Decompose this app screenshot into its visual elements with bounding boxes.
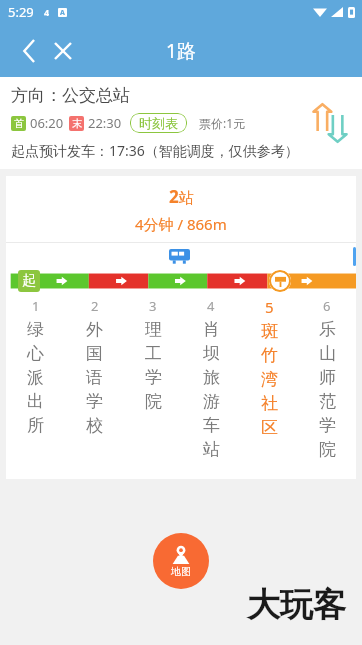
staticText: 绿 [27,319,44,340]
staticText: 湾 [261,369,278,390]
staticText: 学 [86,391,103,412]
staticText: 4 [44,6,50,18]
staticText: 竹 [261,345,278,366]
staticText: 4 [207,297,215,315]
staticText: 出 [27,391,44,412]
staticText: 06:20 [30,114,64,132]
staticText: 外 [86,319,103,340]
staticText: 乐 [319,319,336,340]
staticText: 3 [149,297,157,315]
staticText: 首 [14,117,24,130]
button[interactable]: Back [12,34,46,68]
staticText: 1路 [166,38,196,64]
staticText: 车 [203,415,220,436]
staticText: 22:30 [88,114,122,132]
staticText: 理 [145,319,162,340]
staticText: 方向：公交总站 [11,85,130,106]
other: Current station [269,270,291,292]
staticText: 站 [179,189,194,208]
staticText: A [60,8,65,17]
button[interactable]: Map [153,533,209,589]
staticText: 心 [27,343,44,364]
staticText: 区 [261,417,278,438]
button[interactable]: 6 [298,297,356,463]
staticText: 地图 [171,565,191,578]
staticText: 工 [145,343,162,364]
button[interactable]: 时刻表 [130,113,187,133]
staticText: 派 [27,367,44,388]
staticText: 院 [319,439,336,460]
button[interactable]: 5 [240,297,298,441]
staticText: 山 [319,343,336,364]
staticText: 师 [319,367,336,388]
staticText: 旅 [203,367,220,388]
staticText: 大玩客 [247,584,346,626]
staticText: 学 [319,415,336,436]
staticText: 起 [22,272,36,290]
button[interactable]: 2 [65,297,124,439]
staticText: 坝 [203,343,220,364]
staticText: 2 [91,297,99,315]
staticText: 站 [203,439,220,460]
staticText: 学 [145,367,162,388]
button[interactable]: 1 [6,297,65,439]
staticText: 所 [27,415,44,436]
staticText: 票价:1元 [199,115,246,131]
button[interactable]: Switch direction [307,100,353,146]
staticText: 6 [323,297,331,315]
staticText: 斑 [261,321,278,342]
staticText: 游 [203,391,220,412]
staticText: 校 [86,415,103,436]
staticText: 5:29 [8,3,34,21]
staticText: 4分钟 / 866m [135,214,227,234]
staticText: 1 [32,297,40,315]
button[interactable]: Close [46,34,80,68]
staticText: 范 [319,391,336,412]
staticText: 2 [169,185,179,208]
staticText: 社 [261,393,278,414]
button[interactable]: 4 [182,297,240,463]
staticText: 5 [265,297,274,317]
staticText: 国 [86,343,103,364]
staticText: 时刻表 [139,115,178,131]
staticText: 院 [145,391,162,412]
staticText: 肖 [203,319,220,340]
staticText: 语 [86,367,103,388]
staticText: 起点预计发车：17:36（智能调度，仅供参考） [11,141,299,160]
button[interactable]: 3 [124,297,182,415]
staticText: 末 [72,117,82,130]
